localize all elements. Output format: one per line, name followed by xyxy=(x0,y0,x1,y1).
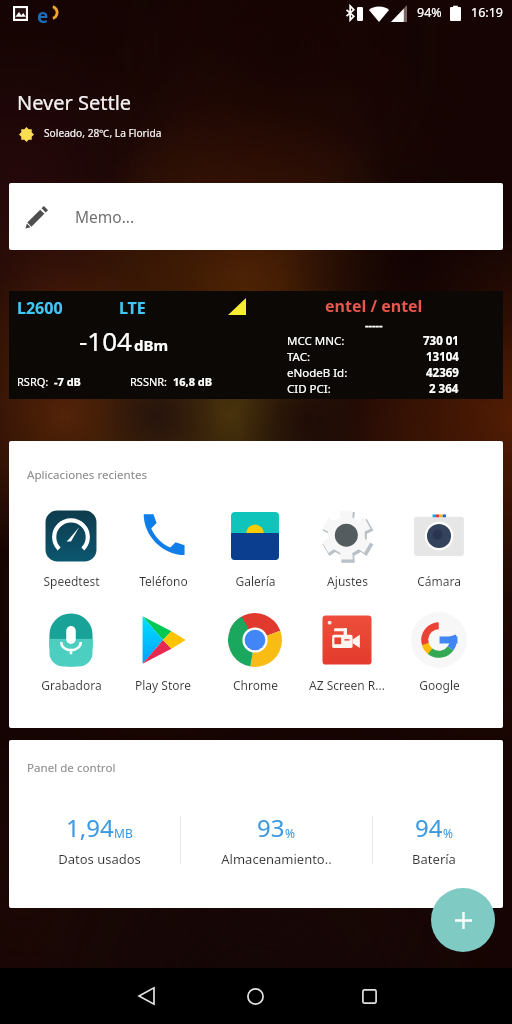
staticText: ----- xyxy=(365,317,383,332)
staticText: 42369 xyxy=(426,365,459,381)
staticText: Ajustes xyxy=(327,573,368,589)
staticText: eNodeB Id: xyxy=(287,365,348,381)
staticText: TAC: xyxy=(287,349,311,365)
staticText: Datos usados xyxy=(58,850,141,868)
staticText: Never Settle xyxy=(17,89,132,116)
staticText: 1,94 xyxy=(66,811,114,844)
staticText: Panel de control xyxy=(27,760,116,776)
button[interactable]: Speedtest xyxy=(25,508,117,589)
staticText: Google xyxy=(419,677,460,693)
staticText: CID PCI: xyxy=(287,381,331,397)
staticText: 730 01 xyxy=(423,333,459,349)
button[interactable]: AZ Screen R... xyxy=(301,612,393,693)
button[interactable]: 94 xyxy=(369,808,499,880)
staticText: Teléfono xyxy=(139,573,188,589)
button[interactable]: 93 xyxy=(211,808,341,880)
staticText: 13104 xyxy=(426,349,459,365)
staticText: L2600 xyxy=(17,297,63,319)
staticText: LTE xyxy=(119,297,146,319)
staticText: 93 xyxy=(257,811,285,844)
staticText: Chrome xyxy=(233,677,278,693)
staticText: Memo... xyxy=(75,206,135,227)
button[interactable]: Chrome xyxy=(209,612,301,693)
staticText: entel / entel xyxy=(325,295,423,317)
staticText: MCC MNC: xyxy=(287,333,345,349)
button[interactable]: 1,94 xyxy=(34,808,164,880)
staticText: 94 xyxy=(415,811,443,844)
staticText: MB xyxy=(114,825,133,841)
staticText: 16,8 dB xyxy=(173,374,213,389)
staticText: Galería xyxy=(235,573,276,589)
staticText: Cámara xyxy=(417,573,461,589)
staticText: Batería xyxy=(412,850,456,868)
staticText: -7 dB xyxy=(54,374,81,389)
button[interactable]: Play Store xyxy=(117,612,209,693)
staticText: RSRQ: xyxy=(17,374,49,389)
button[interactable]: Galería xyxy=(209,508,301,589)
staticText: Soleado, 28℃, La Florida xyxy=(44,126,162,140)
staticText: Almacenamiento.. xyxy=(221,850,332,868)
button[interactable]: Home xyxy=(225,968,285,1024)
button[interactable]: Memo... xyxy=(9,183,503,250)
staticText: dBm xyxy=(134,335,169,355)
button[interactable]: Ajustes xyxy=(301,508,393,589)
staticText: % xyxy=(285,825,295,841)
staticText: Grabadora xyxy=(41,677,102,693)
staticText: % xyxy=(443,825,453,841)
button[interactable]: Google xyxy=(393,612,485,693)
button[interactable]: L2600 xyxy=(9,291,503,399)
button[interactable]: Teléfono xyxy=(117,508,209,589)
staticText: 16:19 xyxy=(471,4,503,21)
staticText: Aplicaciones recientes xyxy=(27,467,148,483)
button[interactable]: Back xyxy=(116,968,176,1024)
staticText: 94% xyxy=(417,4,442,21)
button[interactable]: Grabadora xyxy=(25,612,117,693)
staticText: RSSNR: xyxy=(130,374,168,389)
button[interactable]: Add xyxy=(431,888,495,952)
staticText: 2 364 xyxy=(429,381,459,397)
button[interactable]: Recents xyxy=(339,968,399,1024)
staticText: e xyxy=(37,3,49,25)
staticText: Speedtest xyxy=(43,573,100,589)
staticText: -104 xyxy=(79,323,132,358)
button[interactable]: Cámara xyxy=(393,508,485,589)
staticText: AZ Screen R... xyxy=(309,677,385,693)
staticText: Play Store xyxy=(135,677,191,693)
